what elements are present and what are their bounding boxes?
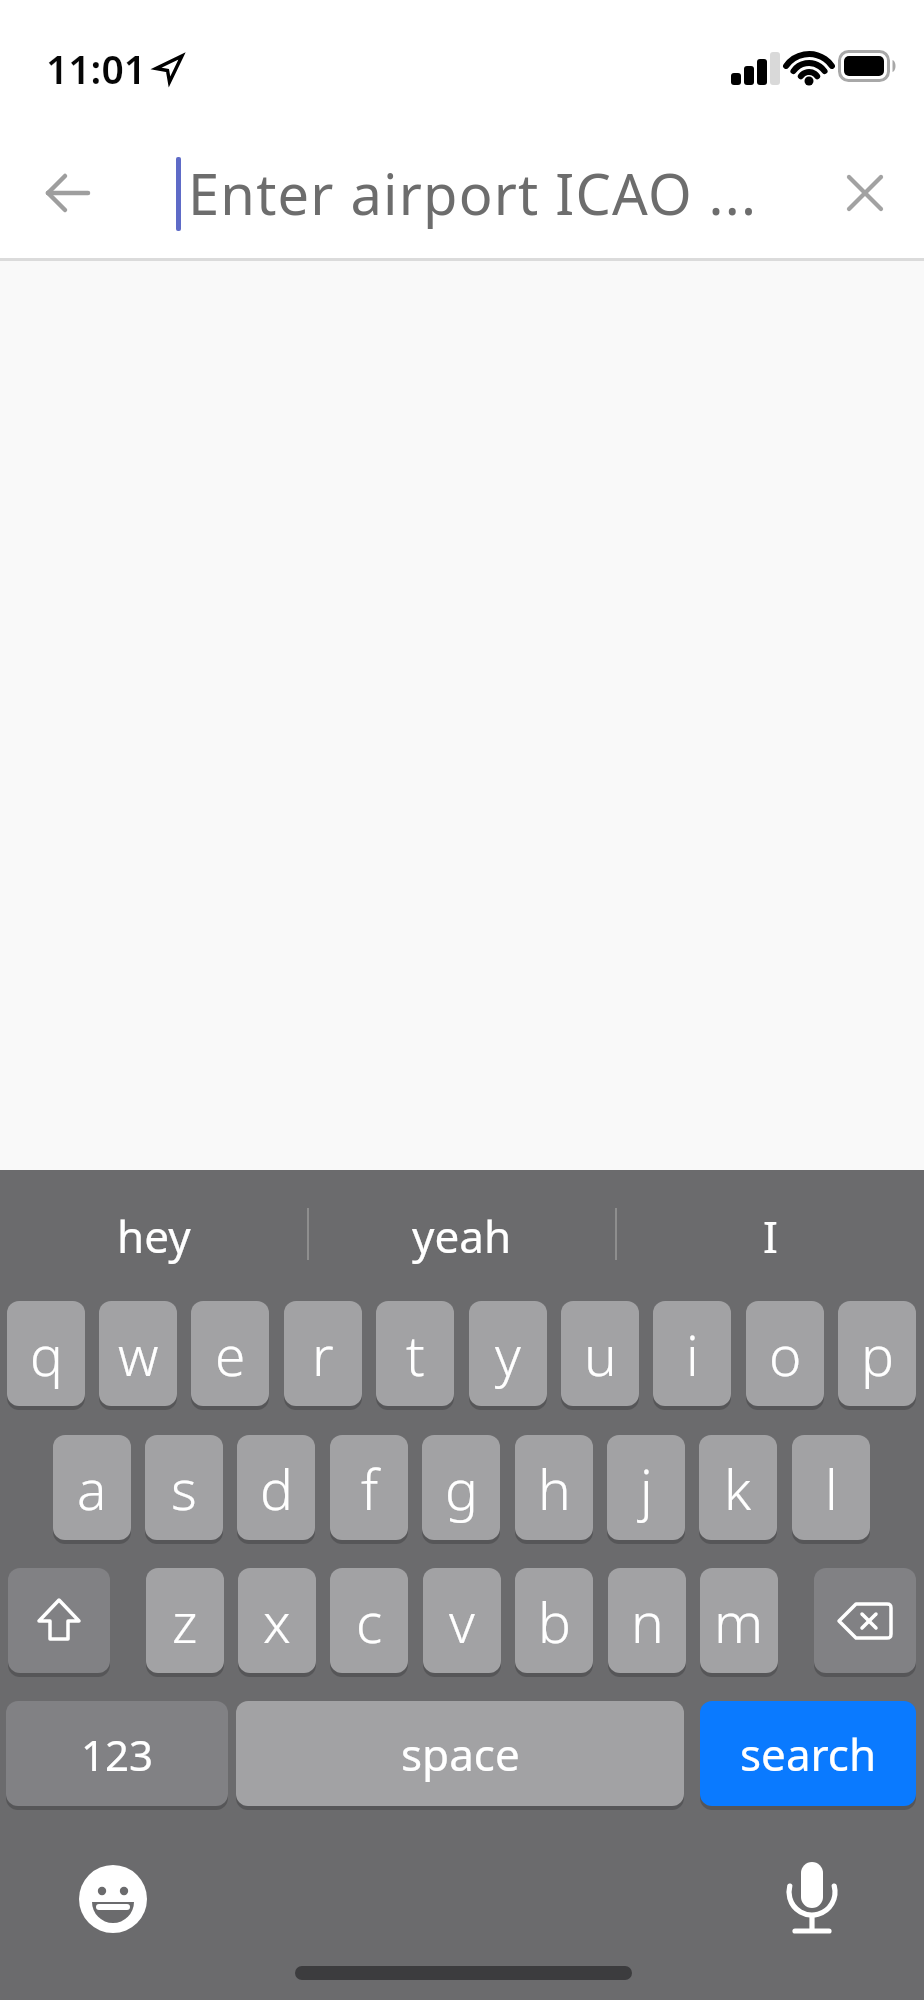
staticText: w [118,1317,159,1392]
button[interactable]: s [145,1435,223,1541]
staticText: o [769,1317,802,1392]
button[interactable]: search [700,1701,916,1807]
button[interactable] [70,1856,156,1942]
button[interactable]: space [236,1701,684,1807]
staticText: n [631,1584,664,1659]
button[interactable]: r [284,1301,362,1407]
button[interactable]: n [608,1568,686,1674]
button[interactable]: m [700,1568,778,1674]
staticText: b [538,1584,571,1659]
button[interactable]: u [561,1301,639,1407]
staticText: y [495,1317,521,1392]
button[interactable] [770,1857,854,1957]
button[interactable]: i [653,1301,731,1407]
staticText: search [740,1724,877,1784]
button[interactable]: f [330,1435,408,1541]
staticText: j [640,1451,653,1526]
button[interactable]: p [838,1301,916,1407]
button[interactable]: l [792,1435,870,1541]
staticText: k [724,1451,752,1526]
staticText: space [401,1724,520,1784]
button[interactable]: z [146,1568,224,1674]
staticText: Enter airport ICAO ... [188,155,758,231]
button[interactable]: y [469,1301,547,1407]
button[interactable] [8,1568,110,1674]
staticText: c [356,1584,383,1659]
staticText: f [361,1451,378,1526]
staticText: p [861,1317,894,1392]
button[interactable]: 123 [6,1701,228,1807]
button[interactable]: hey [0,1196,308,1276]
staticText: q [30,1317,63,1392]
button[interactable] [814,1568,916,1674]
button[interactable]: d [237,1435,315,1541]
button[interactable]: b [515,1568,593,1674]
staticText: h [538,1451,571,1526]
staticText: i [686,1317,699,1392]
button[interactable]: k [699,1435,777,1541]
button[interactable] [830,158,900,228]
button[interactable]: t [376,1301,454,1407]
staticText: u [584,1317,617,1392]
staticText: g [445,1451,478,1526]
button[interactable]: w [99,1301,177,1407]
button[interactable]: yeah [308,1196,616,1276]
staticText: 123 [81,1726,154,1783]
button[interactable]: e [191,1301,269,1407]
button[interactable]: q [7,1301,85,1407]
button[interactable] [30,158,106,228]
button[interactable]: c [330,1568,408,1674]
button[interactable]: I [616,1196,924,1276]
staticText: v [449,1584,475,1659]
button[interactable]: x [238,1568,316,1674]
staticText: e [215,1317,246,1392]
staticText: m [714,1584,764,1659]
staticText: 11:01 [46,42,146,95]
button[interactable]: o [746,1301,824,1407]
staticText: I [763,1206,778,1266]
button[interactable]: v [423,1568,501,1674]
button[interactable]: h [515,1435,593,1541]
staticText: hey [117,1206,191,1266]
staticText: t [406,1317,425,1392]
staticText: d [260,1451,293,1526]
button[interactable]: g [422,1435,500,1541]
button[interactable]: a [53,1435,131,1541]
staticText: s [171,1451,197,1526]
staticText: x [263,1584,291,1659]
staticText: a [77,1451,107,1526]
staticText: r [312,1317,334,1392]
staticText: l [825,1451,838,1526]
button[interactable]: j [607,1435,685,1541]
staticText: yeah [412,1206,512,1266]
staticText: z [172,1584,198,1659]
